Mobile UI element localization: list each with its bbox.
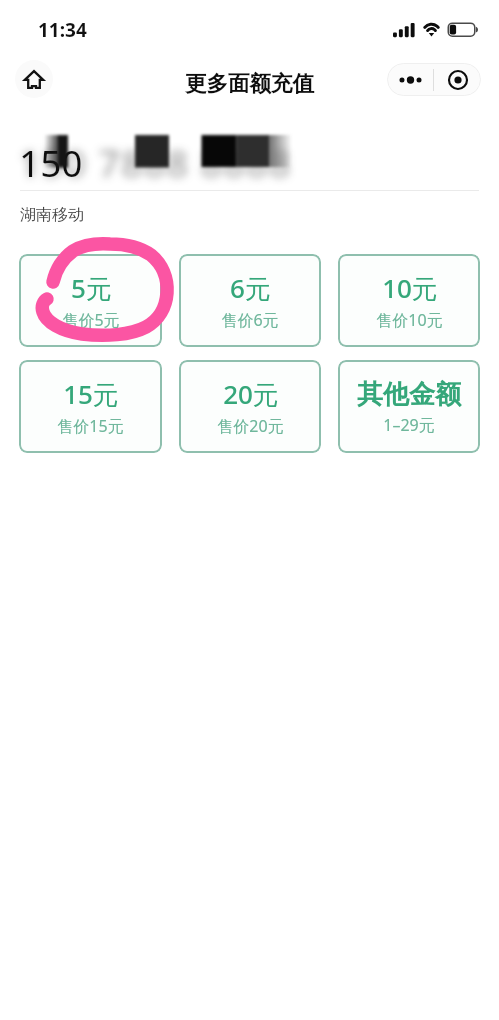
- staticText: 更多面额充值: [185, 70, 314, 97]
- staticText: 售价15元: [57, 415, 124, 437]
- button[interactable]: 20元: [179, 360, 321, 453]
- staticText: 售价6元: [221, 309, 279, 331]
- staticText: 10元: [382, 270, 438, 306]
- staticText: 150 7888 8888: [19, 137, 292, 187]
- staticText: 1–29元: [383, 414, 435, 436]
- staticText: 售价5元: [62, 309, 120, 331]
- staticText: 6元: [230, 270, 271, 306]
- staticText: 其他金额: [357, 378, 461, 411]
- button[interactable]: 10元: [338, 254, 480, 347]
- button[interactable]: More options: [387, 63, 433, 96]
- button[interactable]: Close mini program: [434, 63, 481, 96]
- staticText: 售价20元: [217, 415, 284, 437]
- button[interactable]: 其他金额: [338, 360, 480, 453]
- staticText: 售价10元: [376, 309, 443, 331]
- button[interactable]: Home: [15, 60, 53, 98]
- staticText: 15元: [63, 376, 119, 412]
- button[interactable]: 15元: [19, 360, 162, 453]
- staticText: 20元: [223, 376, 279, 412]
- button[interactable]: 5元: [19, 254, 162, 347]
- button[interactable]: 6元: [179, 254, 321, 347]
- staticText: 湖南移动: [20, 205, 84, 225]
- staticText: 5元: [71, 270, 112, 306]
- staticText: 11:34: [38, 17, 87, 43]
- staticText: 150: [19, 137, 83, 187]
